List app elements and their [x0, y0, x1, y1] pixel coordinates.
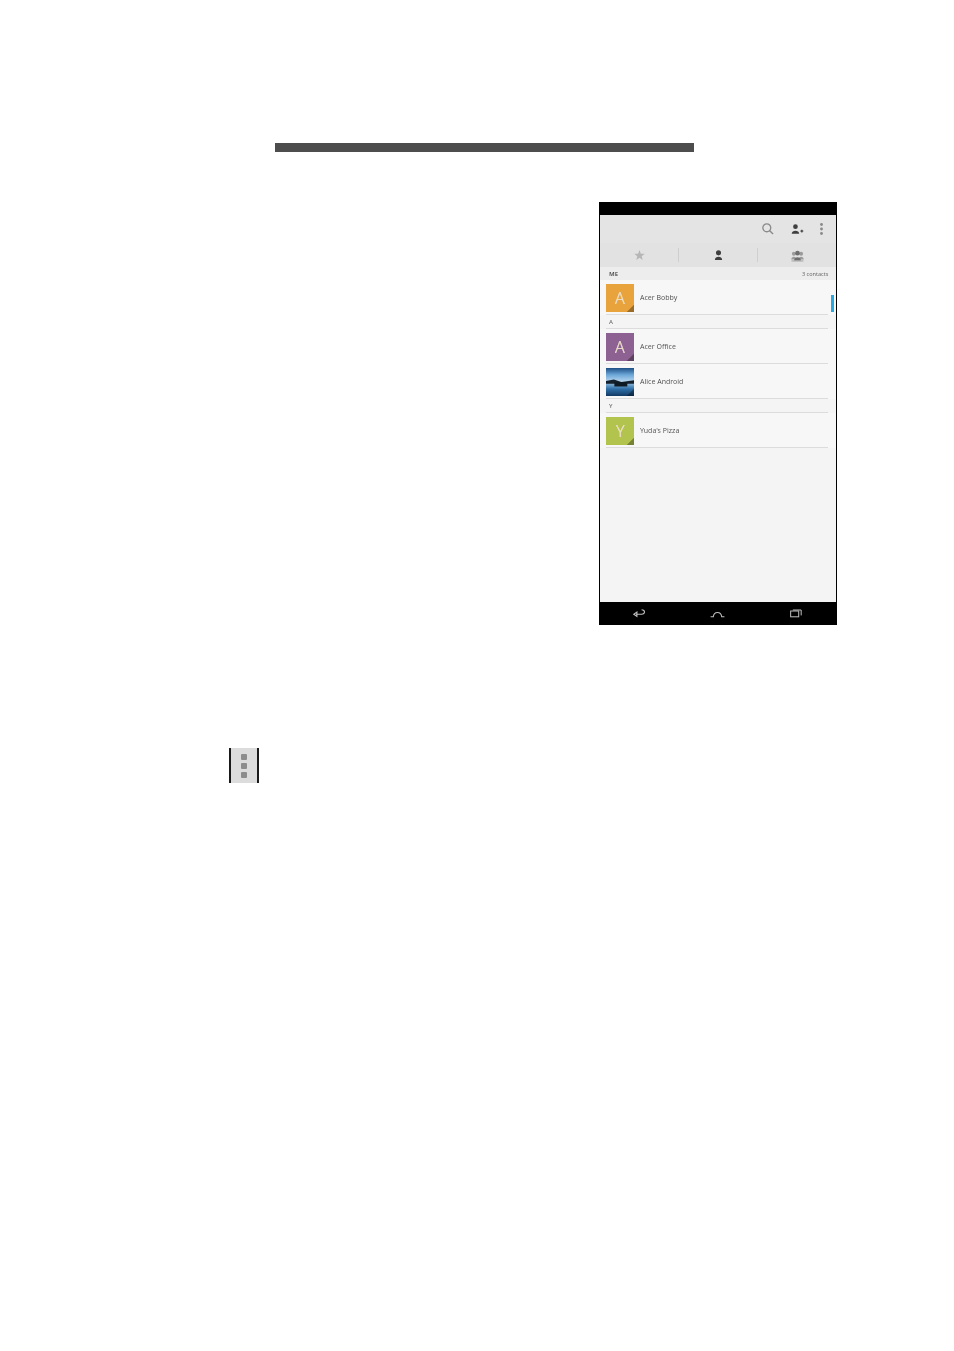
staticText: Y [609, 402, 613, 410]
button[interactable]: Add contact [782, 215, 810, 243]
button[interactable]: Y [600, 413, 836, 448]
staticText: Acer Office [640, 342, 676, 352]
button[interactable]: All contacts [679, 243, 757, 267]
button[interactable]: A [600, 329, 836, 364]
button[interactable]: Back [600, 602, 678, 624]
button[interactable]: Menu button [229, 748, 259, 783]
staticText: ME [609, 270, 619, 278]
button[interactable]: Recent apps [757, 602, 836, 624]
button[interactable]: Groups [758, 243, 836, 267]
button[interactable]: Alice Android [600, 364, 836, 399]
button[interactable]: A [600, 280, 836, 315]
staticText: A [615, 336, 625, 358]
staticText: Acer Bobby [640, 293, 678, 303]
staticText: A [615, 287, 625, 309]
staticText: 3 contacts [802, 270, 829, 277]
staticText: Alice Android [640, 377, 684, 387]
button[interactable]: More options [810, 215, 832, 243]
button[interactable]: Home [678, 602, 757, 624]
staticText: A [609, 318, 613, 326]
staticText: Y [616, 420, 625, 442]
staticText: Yuda's Pizza [640, 426, 680, 436]
button[interactable]: Search [754, 215, 782, 243]
button[interactable]: Favorites [600, 243, 678, 267]
